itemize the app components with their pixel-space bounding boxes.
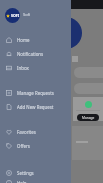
button[interactable]: Notifications (0, 47, 71, 61)
staticText: Notifications (17, 51, 44, 57)
button[interactable]: Add New Request (0, 100, 71, 114)
staticText: Manage Requests (17, 90, 54, 96)
button[interactable]: Inbox (0, 61, 71, 75)
button[interactable]: Manage (77, 114, 99, 121)
staticText: Sofi (23, 12, 31, 18)
staticText: Add New Request (17, 104, 54, 110)
button[interactable]: Offers (0, 139, 71, 153)
staticText: Help (17, 180, 27, 183)
staticText: Manage (82, 116, 95, 120)
staticText: Offers (17, 143, 30, 149)
button[interactable]: Favorites (0, 125, 71, 139)
staticText: SOFI (11, 13, 20, 18)
staticText: Settings (17, 170, 34, 176)
button[interactable]: Manage Requests (0, 86, 71, 100)
button[interactable]: Help (0, 180, 71, 183)
button[interactable]: SOFI (0, 5, 71, 25)
staticText: Favorites (17, 129, 36, 135)
button[interactable]: Settings (0, 166, 71, 180)
staticText: Inbox (17, 65, 29, 71)
button[interactable]: Home (0, 33, 71, 47)
staticText: Home (17, 37, 30, 43)
